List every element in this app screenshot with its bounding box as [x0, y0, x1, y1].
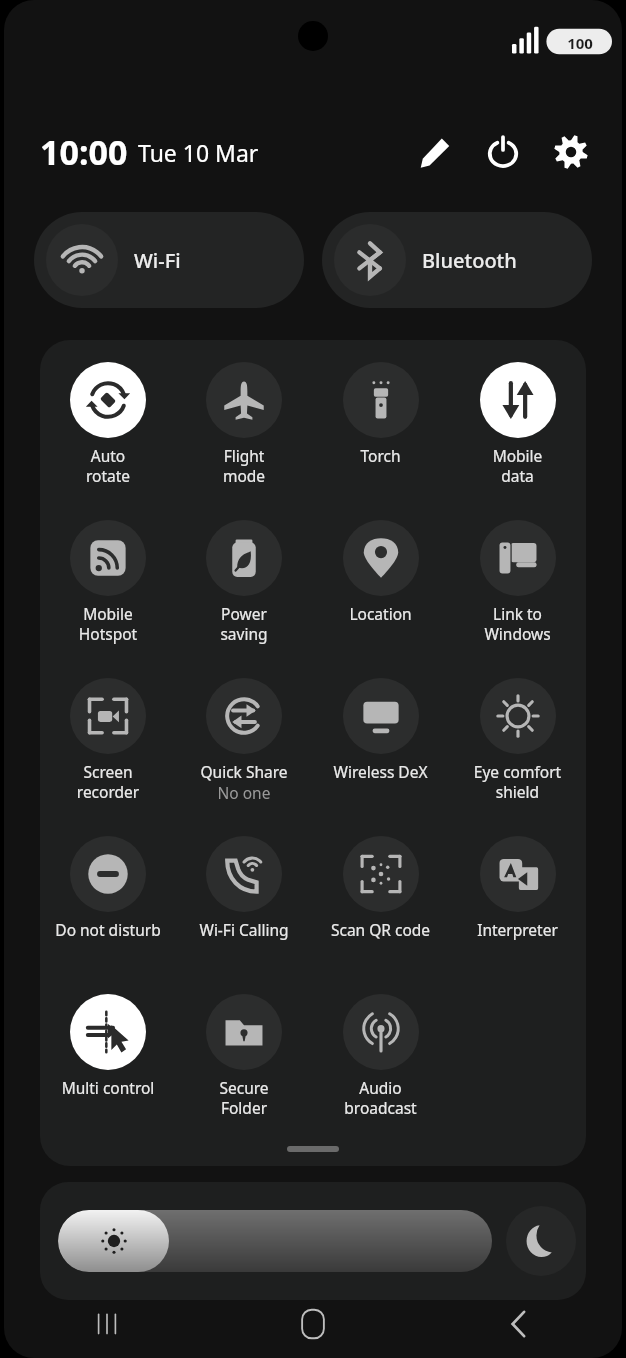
button[interactable]: Settings — [548, 129, 594, 175]
staticText: Power saving — [176, 603, 312, 645]
staticText: Wireless DeX — [312, 761, 449, 782]
button[interactable]: Home — [210, 1290, 416, 1358]
button[interactable]: Location — [312, 520, 449, 678]
button[interactable]: Recents — [4, 1290, 210, 1358]
button[interactable]: Secure Folder — [176, 994, 312, 1144]
staticText: Auto rotate — [40, 445, 176, 487]
button[interactable]: Eye comfort shield — [449, 678, 586, 836]
button[interactable]: Link to Windows — [449, 520, 586, 678]
staticText: Scan QR code — [312, 919, 449, 940]
button[interactable]: Wireless DeX — [312, 678, 449, 836]
staticText: Wi-Fi — [134, 247, 181, 274]
staticText: Multi control — [40, 1077, 176, 1098]
staticText: Secure Folder — [176, 1077, 312, 1119]
button[interactable]: Edit — [412, 129, 458, 175]
button[interactable]: Audio broadcast — [312, 994, 449, 1144]
button[interactable]: Interpreter — [449, 836, 586, 994]
button[interactable]: Quick Share — [176, 678, 312, 836]
staticText: Eye comfort shield — [449, 761, 586, 803]
button[interactable]: Dark mode — [506, 1206, 576, 1276]
button[interactable]: Power — [480, 129, 526, 175]
staticText: 100 — [567, 33, 593, 53]
staticText: 10:00 — [40, 129, 128, 175]
staticText: Interpreter — [449, 919, 586, 940]
staticText: Wi-Fi Calling — [176, 919, 312, 940]
button[interactable]: Flight mode — [176, 362, 312, 520]
button[interactable]: Do not disturb — [40, 836, 176, 994]
button[interactable]: Mobile data — [449, 362, 586, 520]
staticText: Link to Windows — [449, 603, 586, 645]
button[interactable]: Bluetooth — [322, 212, 592, 308]
button[interactable]: Wi-Fi Calling — [176, 836, 312, 994]
staticText: Location — [312, 603, 449, 624]
button[interactable]: Auto rotate — [40, 362, 176, 520]
staticText: Audio broadcast — [312, 1077, 449, 1119]
staticText: Flight mode — [176, 445, 312, 487]
staticText: Mobile Hotspot — [40, 603, 176, 645]
staticText: Screen recorder — [40, 761, 176, 803]
button[interactable]: Brightness — [58, 1210, 492, 1272]
staticText: Bluetooth — [422, 247, 517, 274]
button[interactable]: Screen recorder — [40, 678, 176, 836]
button[interactable]: Power saving — [176, 520, 312, 678]
staticText: Mobile data — [449, 445, 586, 487]
staticText: No one — [176, 782, 312, 803]
button[interactable]: Torch — [312, 362, 449, 520]
button[interactable]: Wi-Fi — [34, 212, 304, 308]
button[interactable]: Multi control — [40, 994, 176, 1144]
staticText: Do not disturb — [40, 919, 176, 940]
staticText: Torch — [312, 445, 449, 466]
button[interactable]: Back — [416, 1290, 622, 1358]
staticText: Tue 10 Mar — [138, 137, 259, 168]
button[interactable]: Mobile Hotspot — [40, 520, 176, 678]
button[interactable]: Scan QR code — [312, 836, 449, 994]
staticText: Quick Share — [176, 761, 312, 782]
